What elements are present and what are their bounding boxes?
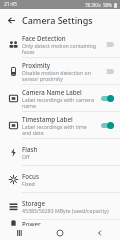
button[interactable]: Back xyxy=(80,226,120,240)
button[interactable]: Storage xyxy=(0,193,120,219)
button[interactable]: Home xyxy=(40,226,80,240)
button[interactable]: Face Detection xyxy=(0,31,120,57)
button[interactable]: Recents xyxy=(0,226,40,240)
staticText: Fixed xyxy=(22,180,35,187)
staticText: Flash xyxy=(22,145,38,153)
staticText: Camera Name Label xyxy=(22,88,82,96)
button[interactable]: Off xyxy=(99,65,115,77)
staticText: Face Detection xyxy=(22,34,66,42)
button[interactable]: Flash xyxy=(0,139,120,165)
staticText: Timestamp Label xyxy=(22,115,73,123)
staticText: Label recordings with time and date xyxy=(22,123,96,136)
staticText: Disable motion detection on sensor proxi… xyxy=(22,69,96,82)
staticText: Power xyxy=(22,220,41,226)
staticText: Proximity xyxy=(22,61,51,69)
button[interactable]: Power xyxy=(0,220,120,226)
staticText: Camera Settings xyxy=(22,14,93,26)
staticText: Storage xyxy=(22,199,45,207)
staticText: Label recordings with camera name xyxy=(22,96,96,109)
button[interactable]: Off xyxy=(99,38,115,50)
staticText: 45383/56283 MByte (used/capacity) xyxy=(22,207,109,214)
staticText: Focus xyxy=(22,172,39,180)
staticText: 78.3K/s 58% xyxy=(85,2,112,8)
staticText: Off xyxy=(22,153,30,160)
button[interactable]: Proximity xyxy=(0,58,120,84)
staticText: Only detect motion containing faces xyxy=(22,42,96,55)
button[interactable]: On xyxy=(99,92,115,104)
button[interactable]: Camera Name Label xyxy=(0,85,120,111)
button[interactable]: On xyxy=(99,119,115,131)
button[interactable]: Back xyxy=(0,9,22,31)
staticText: 21:45 xyxy=(4,1,17,8)
button[interactable]: Timestamp Label xyxy=(0,112,120,138)
button[interactable]: Focus xyxy=(0,166,120,192)
